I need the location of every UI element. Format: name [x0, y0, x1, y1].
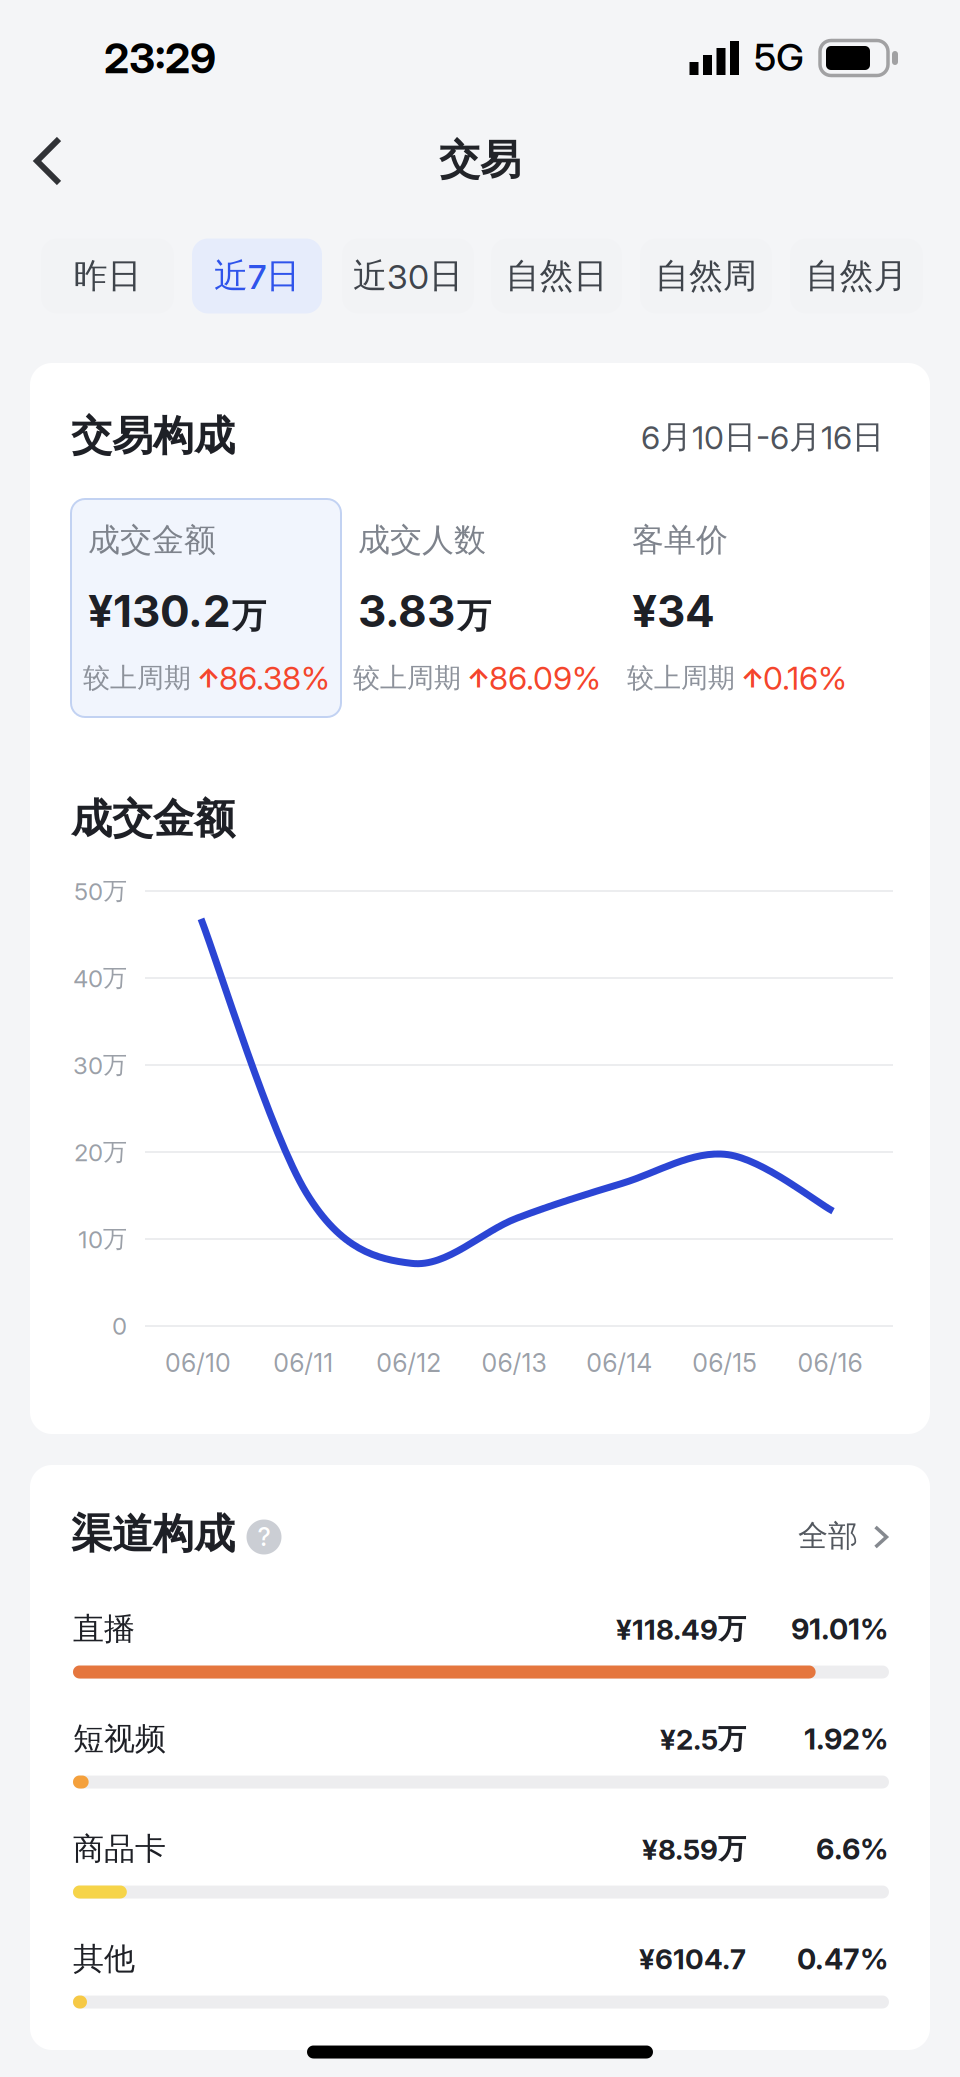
staticText: ¥130.2 — [88, 584, 231, 638]
staticText: 06/11 — [273, 1348, 333, 1378]
staticText: 成交金额 — [71, 793, 235, 845]
staticText: ¥118.49万 — [616, 1611, 746, 1647]
staticText: ↑ — [741, 662, 764, 694]
staticText: 客单价 — [632, 520, 728, 560]
staticText: 50万 — [74, 876, 127, 906]
staticText: 自然周 — [655, 255, 757, 297]
staticText: 交易构成 — [71, 410, 235, 462]
staticText: 1.92% — [804, 1721, 888, 1757]
staticText: 06/10 — [165, 1348, 231, 1378]
staticText: 万 — [232, 595, 266, 637]
staticText: 自然月 — [805, 255, 907, 297]
staticText: 万 — [457, 595, 491, 637]
staticText: 短视频 — [73, 1719, 166, 1759]
staticText: 昨日 — [73, 255, 141, 297]
staticText: 较上周期 — [353, 661, 461, 695]
staticText: ↑ — [197, 662, 220, 694]
staticText: 交易 — [439, 134, 521, 186]
staticText: 06/14 — [586, 1348, 652, 1378]
staticText: ¥6104.7 — [639, 1942, 746, 1976]
staticText: 近7日 — [214, 255, 300, 297]
staticText: 6月10日-6月16日 — [641, 417, 884, 457]
button[interactable]: 其他 — [0, 0, 960, 2077]
staticText: ? — [257, 1522, 270, 1552]
button[interactable]: 近30日 — [342, 238, 474, 313]
staticText: 5G — [754, 34, 804, 80]
staticText: 较上周期 — [83, 661, 191, 695]
button[interactable]: 近7日 — [192, 238, 322, 313]
staticText: 91.01% — [791, 1611, 888, 1647]
staticText: 06/12 — [376, 1348, 441, 1378]
staticText: ↑ — [467, 662, 490, 694]
staticText: 成交金额 — [88, 520, 216, 560]
staticText: 较上周期 — [627, 661, 735, 695]
staticText: 商品卡 — [73, 1829, 166, 1869]
staticText: 20万 — [74, 1137, 127, 1167]
staticText: 06/16 — [797, 1348, 862, 1378]
staticText: 0.16% — [763, 659, 847, 697]
staticText: 40万 — [73, 963, 127, 993]
button[interactable]: 昨日 — [41, 238, 174, 313]
staticText: 渠道构成 — [71, 1508, 235, 1560]
staticText: 10万 — [78, 1224, 127, 1254]
button[interactable]: 全部 — [0, 0, 960, 2077]
staticText: 0 — [112, 1311, 127, 1340]
button[interactable]: Back — [4, 108, 92, 214]
button[interactable]: 短视频 — [0, 0, 960, 2077]
staticText: 3.83 — [358, 584, 455, 638]
staticText: 近30日 — [353, 255, 463, 297]
button[interactable]: 直播 — [0, 0, 960, 2077]
staticText: 86.38% — [219, 659, 330, 697]
staticText: 30万 — [73, 1050, 127, 1080]
staticText: ¥34 — [632, 584, 715, 638]
staticText: 成交人数 — [358, 520, 486, 560]
button[interactable]: 自然月 — [790, 238, 923, 313]
staticText: 0.47% — [797, 1941, 888, 1977]
button[interactable]: 商品卡 — [0, 0, 960, 2077]
staticText: 06/13 — [481, 1348, 546, 1378]
staticText: 86.09% — [489, 659, 601, 697]
button[interactable]: 自然日 — [491, 238, 622, 313]
staticText: 06/15 — [692, 1348, 757, 1378]
staticText: 23:29 — [104, 33, 216, 83]
staticText: 全部 — [798, 1517, 858, 1555]
staticText: 6.6% — [816, 1831, 888, 1867]
staticText: ¥8.59万 — [642, 1831, 746, 1867]
staticText: 直播 — [73, 1609, 135, 1649]
staticText: 其他 — [73, 1939, 135, 1979]
staticText: ¥2.5万 — [660, 1721, 746, 1757]
staticText: 自然日 — [505, 255, 607, 297]
button[interactable]: 自然周 — [640, 238, 772, 313]
